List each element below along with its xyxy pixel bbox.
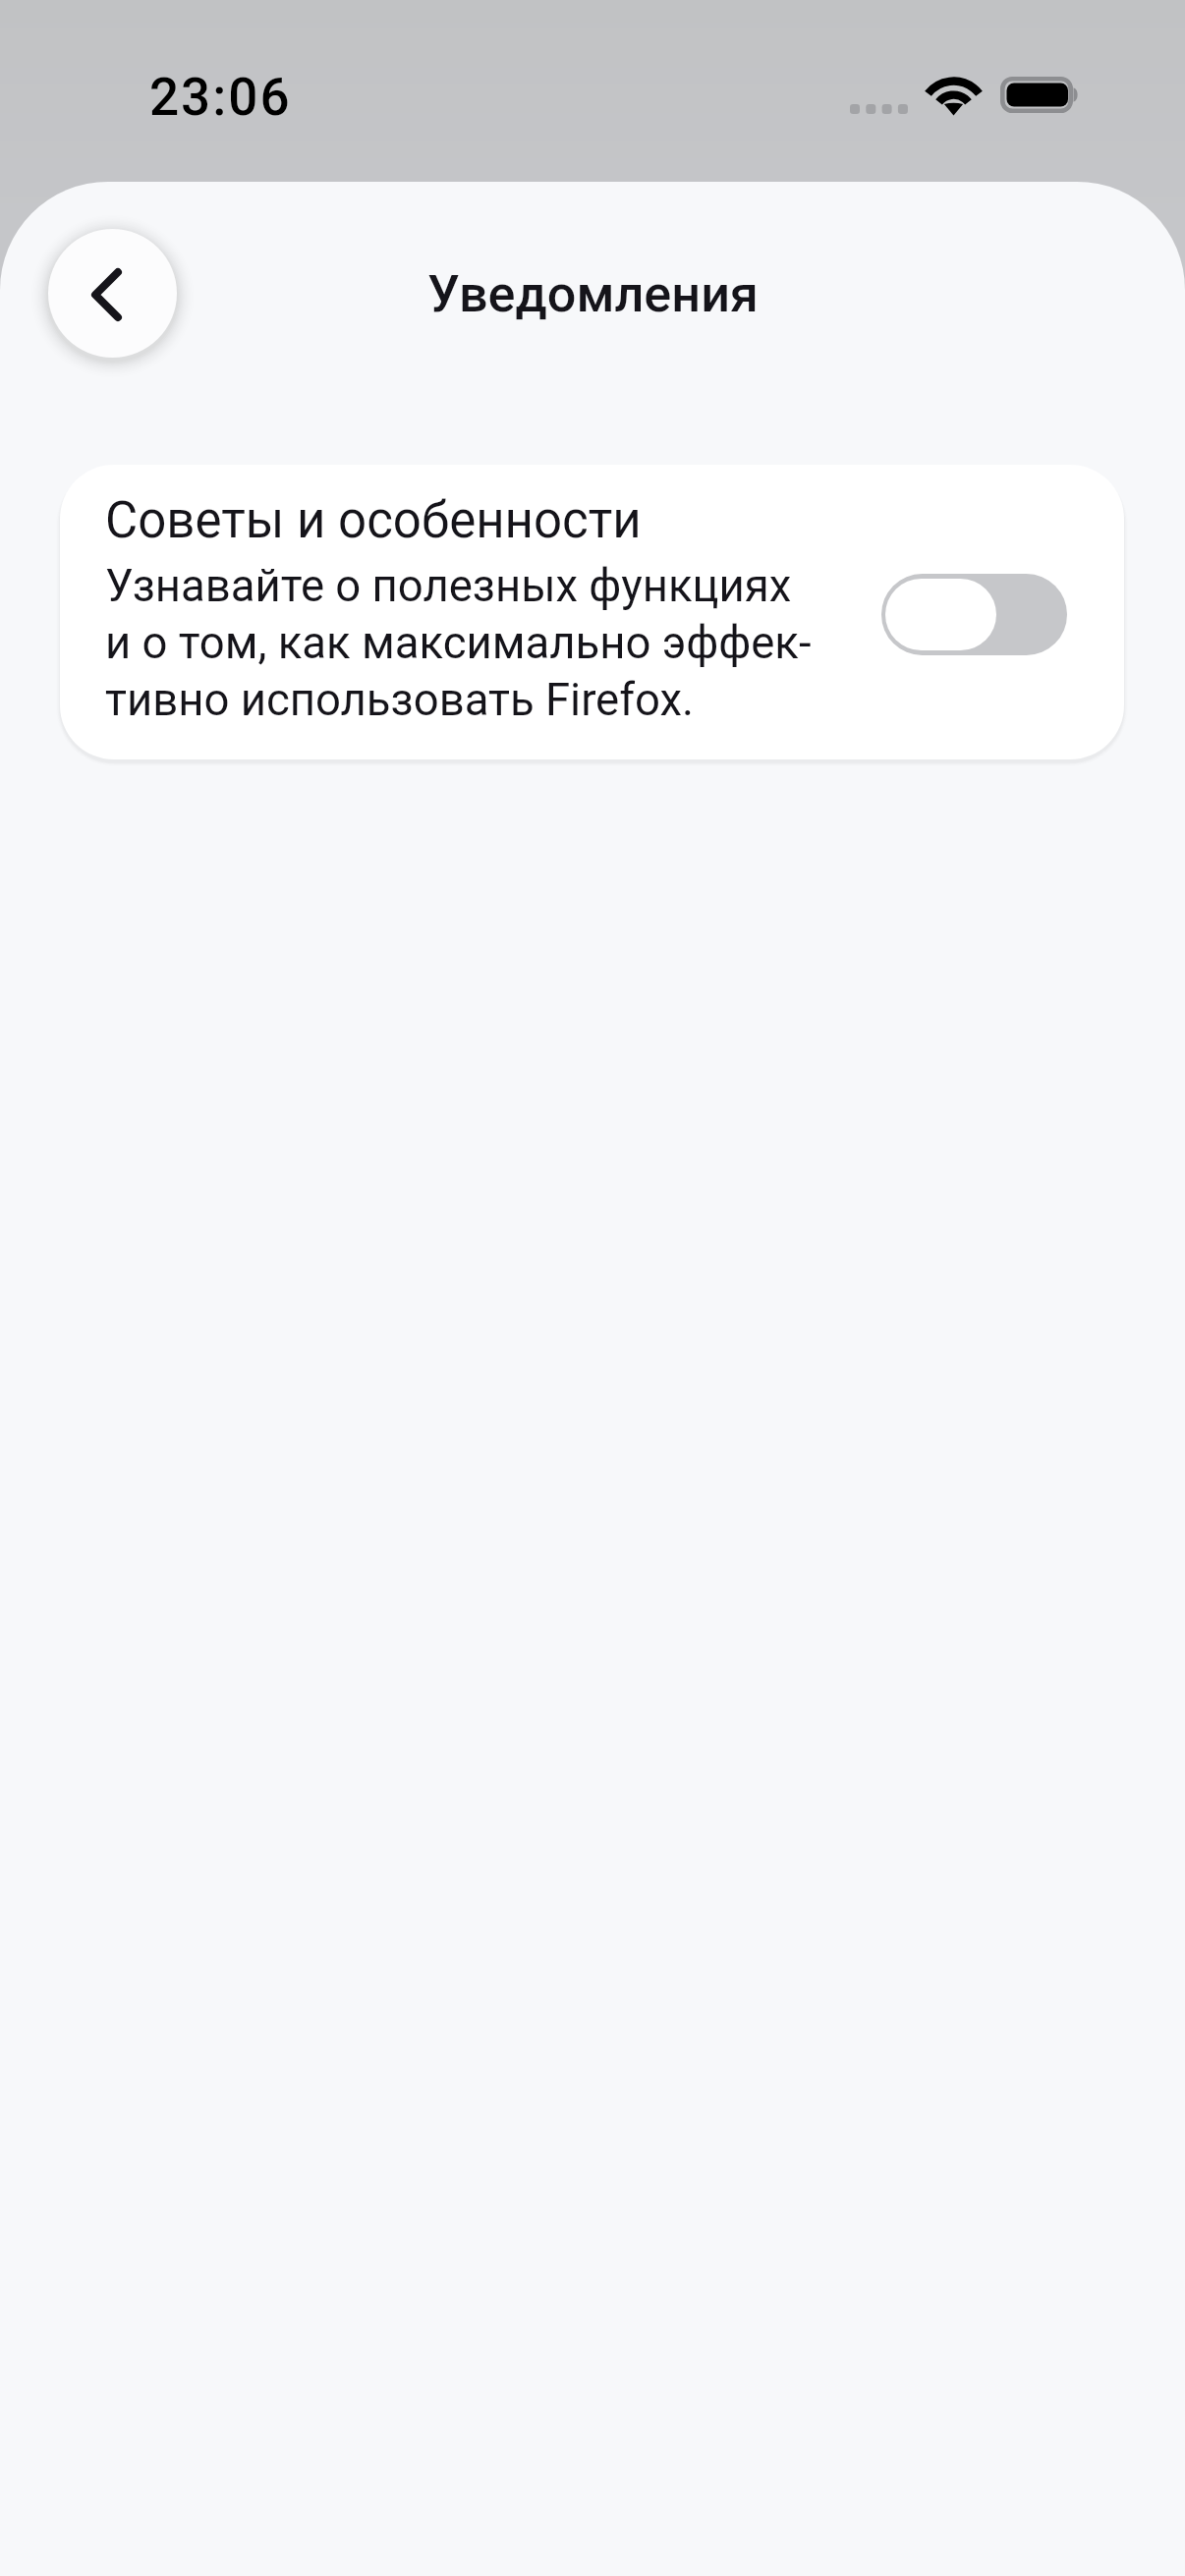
staticText: Узнавайте о полезных функциях и о том, к… — [105, 556, 812, 727]
staticText: Советы и особенности — [105, 489, 642, 550]
button[interactable]: Back — [48, 229, 177, 358]
staticText: Уведомления — [427, 264, 759, 323]
staticText: 23:06 — [149, 67, 292, 128]
button[interactable]: Tips and features switch, off — [881, 574, 1067, 655]
button[interactable]: Советы и особенности — [60, 465, 1124, 759]
